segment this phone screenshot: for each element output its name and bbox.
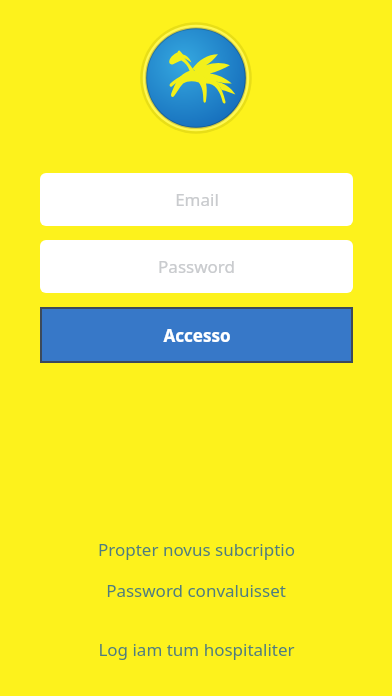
other: App logo	[136, 18, 256, 138]
staticText: Log iam tum hospitaliter	[98, 638, 295, 661]
button[interactable]: Password	[40, 240, 353, 293]
button[interactable]: Email	[40, 173, 353, 226]
button[interactable]: Password convaluisset	[100, 577, 292, 604]
staticText: Email	[175, 188, 219, 211]
staticText: Password	[158, 255, 235, 278]
staticText: Accesso	[163, 324, 231, 347]
staticText: Password convaluisset	[106, 579, 286, 602]
button[interactable]: Accesso	[40, 307, 353, 363]
button[interactable]: Propter novus subcriptio	[92, 536, 301, 563]
button[interactable]: Log iam tum hospitaliter	[92, 636, 301, 663]
staticText: Propter novus subcriptio	[98, 538, 295, 561]
